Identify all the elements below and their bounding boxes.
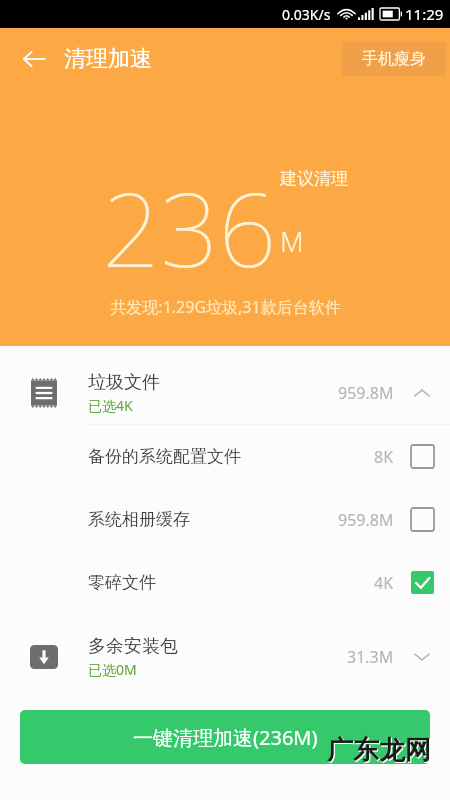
button[interactable]: 一键清理加速(236M) [20, 710, 430, 764]
staticText: 建议清理 [280, 168, 348, 189]
staticText: 清理加速 [64, 45, 152, 73]
staticText: 11:29 [405, 4, 444, 24]
staticText: 0.03K/s [282, 5, 331, 24]
button[interactable]: 手机瘦身 [342, 42, 446, 76]
button[interactable]: Not selected [411, 508, 434, 531]
button[interactable]: 垃圾文件 [0, 362, 450, 424]
staticText: 系统相册缓存 [88, 509, 338, 530]
staticText: 备份的系统配置文件 [88, 446, 374, 467]
staticText: 8K [374, 446, 394, 468]
staticText: 共发现:1.29G垃圾,31款后台软件 [110, 296, 341, 318]
staticText: 已选4K [88, 396, 133, 415]
button[interactable]: Back [12, 37, 56, 81]
button[interactable]: 系统相册缓存 [0, 488, 450, 551]
button[interactable]: Not selected [411, 445, 434, 468]
staticText: 广东龙网 [327, 734, 431, 767]
button[interactable]: 备份的系统配置文件 [0, 425, 450, 488]
button[interactable]: Selected [411, 571, 434, 594]
staticText: 4K [374, 572, 394, 594]
staticText: 手机瘦身 [362, 49, 426, 69]
staticText: 已选0M [88, 660, 137, 679]
button[interactable]: 多余安装包 [0, 626, 450, 688]
staticText: 31.3M [347, 646, 394, 668]
staticText: M [280, 223, 304, 260]
button[interactable]: 零碎文件 [0, 551, 450, 614]
staticText: 236 [102, 158, 277, 297]
staticText: 一键清理加速(236M) [133, 724, 318, 751]
staticText: 959.8M [338, 382, 394, 404]
staticText: 零碎文件 [88, 572, 374, 593]
staticText: 垃圾文件 [88, 371, 160, 394]
staticText: 959.8M [338, 509, 394, 531]
staticText: 多余安装包 [88, 635, 178, 658]
staticText: 广东龙网 [328, 735, 432, 768]
